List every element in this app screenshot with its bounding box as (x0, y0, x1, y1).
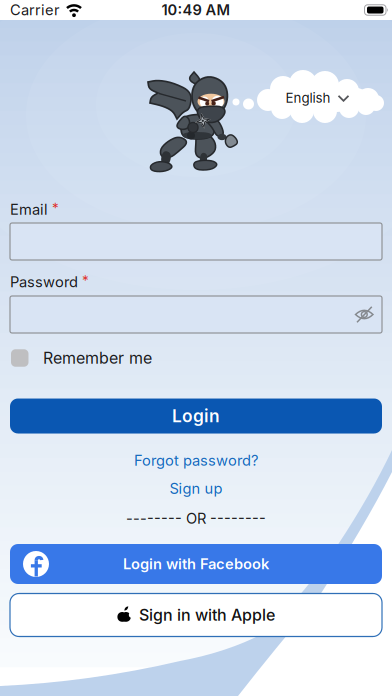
staticText: Carrier (10, 1, 60, 19)
button[interactable]: Show password (0, 0, 392, 696)
button[interactable]: Sign up (161, 476, 230, 501)
staticText: Email (10, 201, 48, 218)
button[interactable]: Language: English (0, 0, 392, 696)
staticText: Sign in with Apple (139, 606, 275, 624)
staticText: Sign up (169, 480, 222, 497)
button[interactable]: Remember me (11, 349, 383, 367)
staticText: -------- OR -------- (126, 510, 266, 527)
staticText: English (285, 90, 330, 106)
staticText: Remember me (43, 349, 152, 367)
staticText: Password (10, 273, 78, 291)
button[interactable]: Login with Facebook (10, 544, 382, 584)
button[interactable]: Login (10, 398, 382, 433)
button[interactable]: Sign in with Apple (10, 593, 382, 636)
staticText: * (52, 200, 59, 216)
staticText: Login with Facebook (123, 555, 269, 573)
staticText: Forgot password? (134, 452, 258, 469)
staticText: * (82, 273, 89, 288)
staticText: Login (172, 406, 220, 426)
staticText: 10:49 AM (161, 1, 230, 19)
button[interactable]: Forgot password? (126, 448, 266, 473)
